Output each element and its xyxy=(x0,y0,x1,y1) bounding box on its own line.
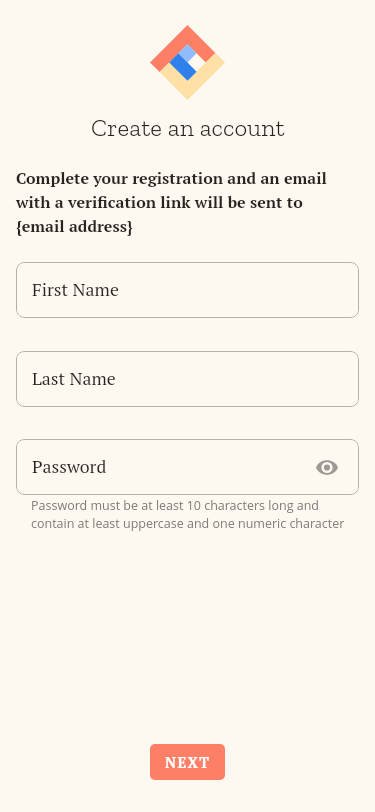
button[interactable]: Last Name xyxy=(16,351,359,407)
staticText: NEXT xyxy=(165,753,211,772)
button[interactable]: Show password xyxy=(316,460,338,475)
staticText: Create an account xyxy=(91,112,285,142)
button[interactable]: NEXT xyxy=(150,744,225,780)
staticText: Complete your registration and an email … xyxy=(16,167,375,236)
staticText: Password must be at least 10 characters … xyxy=(31,497,375,532)
staticText: First Name xyxy=(32,278,338,302)
staticText: Last Name xyxy=(32,367,338,391)
staticText: Password xyxy=(32,455,316,479)
button[interactable]: Password xyxy=(16,439,359,495)
button[interactable]: First Name xyxy=(16,262,359,318)
